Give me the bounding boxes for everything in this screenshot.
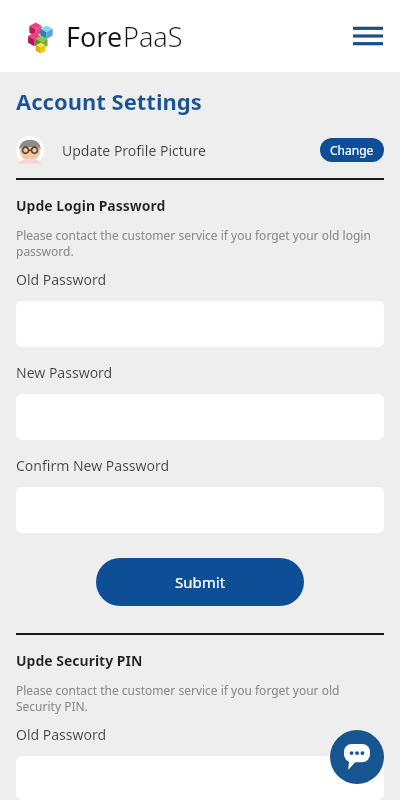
staticText: Confirm New Password — [16, 456, 170, 475]
staticText: Please contact the customer service if y… — [16, 227, 384, 260]
staticText: Old Password — [16, 270, 107, 289]
staticText: Please contact the customer service if y… — [16, 682, 384, 715]
staticText: Old Password — [16, 725, 107, 744]
button[interactable]: Open chat support — [330, 730, 384, 784]
staticText: New Password — [16, 363, 113, 382]
staticText: Fore — [66, 18, 123, 55]
staticText: Upde Security PIN — [16, 651, 143, 670]
staticText: Upde Login Password — [16, 196, 166, 215]
button[interactable]: Submit — [96, 558, 304, 606]
button[interactable]: Change — [320, 138, 384, 162]
staticText: Change — [330, 142, 374, 158]
staticText: PaaS — [123, 18, 183, 55]
staticText: Submit — [175, 572, 226, 592]
staticText: Account Settings — [16, 86, 202, 116]
button[interactable]: Menu — [346, 14, 390, 58]
button[interactable]: Update Profile Picture — [16, 130, 384, 170]
button[interactable] — [16, 756, 384, 800]
staticText: Update Profile Picture — [62, 141, 206, 160]
